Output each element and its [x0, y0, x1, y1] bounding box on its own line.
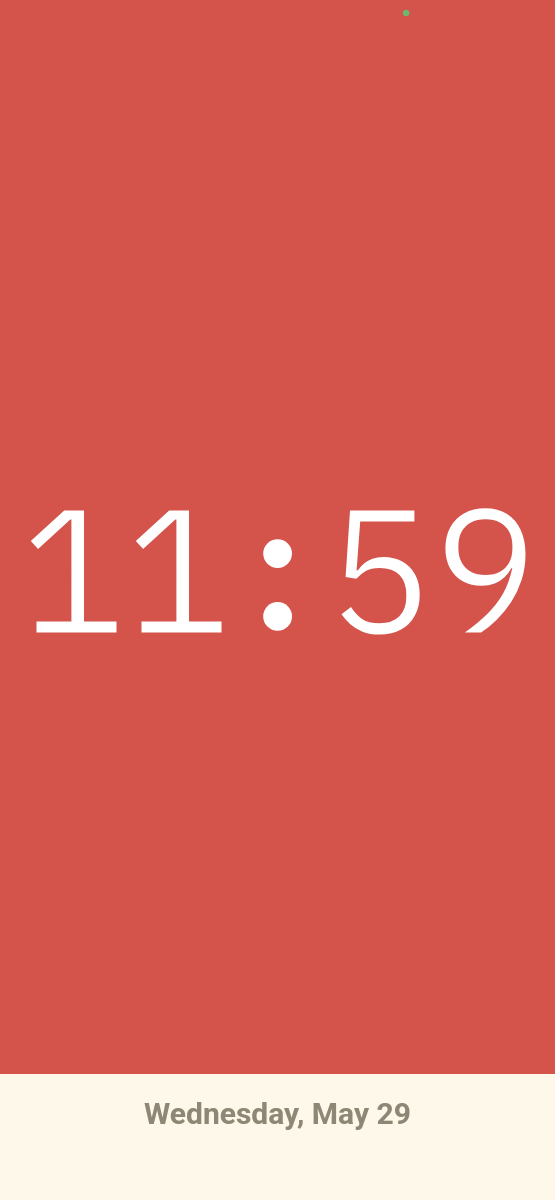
staticText: Wednesday, May 29 [144, 1096, 411, 1131]
button[interactable]: Current time 11:59 [0, 0, 555, 1200]
button[interactable]: Wednesday, May 29 [0, 1074, 555, 1200]
